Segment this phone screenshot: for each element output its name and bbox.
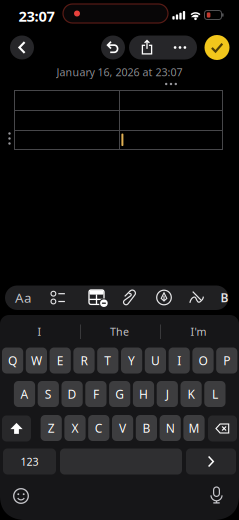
button[interactable]	[10, 35, 34, 59]
staticText: J	[166, 386, 169, 402]
button[interactable]: Aa	[8, 285, 38, 309]
button[interactable]: M	[183, 415, 205, 441]
button[interactable]: N	[160, 415, 181, 441]
button[interactable]: J	[157, 381, 178, 407]
button[interactable]	[183, 285, 211, 309]
button[interactable]	[186, 448, 236, 474]
button[interactable]: Z	[41, 415, 62, 441]
button[interactable]: U	[145, 347, 166, 373]
staticText: M	[188, 420, 199, 436]
staticText: D	[68, 386, 77, 402]
staticText: V	[119, 420, 126, 436]
button[interactable]: I	[169, 347, 190, 373]
button[interactable]	[163, 35, 197, 59]
button[interactable]	[44, 285, 72, 309]
button[interactable]: T	[97, 347, 118, 373]
button[interactable]: R	[73, 347, 95, 373]
staticText: B	[142, 420, 150, 436]
button[interactable]: S	[38, 381, 59, 407]
staticText: Q	[8, 352, 17, 368]
staticText: S	[45, 386, 52, 402]
button[interactable]: A	[14, 381, 35, 407]
staticText: I'm	[190, 324, 206, 339]
button[interactable]	[2, 415, 31, 441]
staticText: B	[220, 289, 228, 305]
staticText: I	[177, 352, 181, 368]
button[interactable]: K	[180, 381, 202, 407]
button[interactable]: E	[50, 347, 71, 373]
button[interactable]: X	[64, 415, 86, 441]
staticText: H	[139, 386, 148, 402]
staticText: R	[80, 352, 87, 368]
button[interactable]	[208, 415, 237, 441]
staticText: Aa	[15, 289, 31, 306]
button[interactable]	[101, 35, 125, 59]
button[interactable]	[83, 285, 111, 309]
staticText: T	[104, 352, 111, 368]
button[interactable]: P	[216, 347, 237, 373]
staticText: P	[223, 352, 230, 368]
button[interactable]: F	[85, 381, 106, 407]
button[interactable]: V	[112, 415, 133, 441]
button[interactable]: L	[204, 381, 225, 407]
staticText: O	[198, 352, 207, 368]
staticText: F	[93, 386, 99, 402]
staticText: I	[37, 324, 41, 339]
staticText: U	[151, 352, 160, 368]
staticText: N	[166, 420, 175, 436]
button[interactable]: H	[133, 381, 154, 407]
button[interactable]: O	[192, 347, 214, 373]
button[interactable]	[150, 285, 178, 309]
staticText: X	[71, 420, 78, 436]
staticText: A	[20, 386, 28, 402]
staticText: C	[95, 420, 103, 436]
staticText: G	[115, 386, 124, 402]
staticText: E	[57, 352, 64, 368]
button[interactable]: 123	[3, 448, 56, 474]
button[interactable]: Q	[2, 347, 23, 373]
button[interactable]: Y	[121, 347, 142, 373]
staticText: 123	[20, 454, 38, 469]
button[interactable]: C	[88, 415, 109, 441]
staticText: Y	[128, 352, 135, 368]
button[interactable]: I	[1, 320, 77, 342]
button[interactable]	[114, 285, 142, 309]
staticText: L	[212, 386, 218, 402]
staticText: The	[110, 324, 129, 339]
button[interactable]: D	[61, 381, 83, 407]
staticText: W	[31, 352, 42, 368]
staticText: Z	[48, 420, 55, 436]
staticText: K	[188, 386, 195, 402]
staticText: January 16, 2026 at 23:07	[56, 65, 182, 79]
staticText: 23:07	[18, 6, 54, 26]
button[interactable]: B	[136, 415, 157, 441]
button[interactable]: W	[26, 347, 47, 373]
button[interactable]	[210, 486, 223, 503]
button[interactable]	[13, 488, 28, 503]
button[interactable]: The	[81, 320, 157, 342]
button[interactable]	[204, 35, 229, 60]
button[interactable]: I'm	[160, 320, 236, 342]
button[interactable]: G	[109, 381, 130, 407]
button[interactable]	[130, 35, 164, 59]
